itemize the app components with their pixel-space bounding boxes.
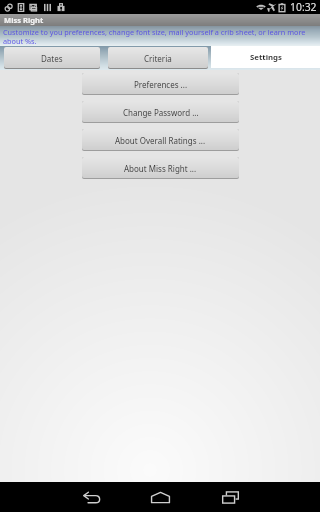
button[interactable]: Recent apps <box>197 482 263 512</box>
staticText: Miss Right <box>4 15 44 25</box>
button[interactable]: Back <box>59 482 125 512</box>
staticText: 10:32 <box>290 0 317 14</box>
button[interactable]: Home <box>127 482 193 512</box>
staticText: About Overall Ratings ... <box>115 135 206 146</box>
button[interactable]: About Miss Right ... <box>82 157 239 179</box>
button[interactable]: Settings <box>211 46 320 68</box>
button[interactable]: Criteria <box>108 47 208 69</box>
staticText: About Miss Right ... <box>124 163 197 174</box>
staticText: Customize to you preferences, change fon… <box>3 27 320 46</box>
staticText: Preferences ... <box>134 79 188 90</box>
button[interactable]: Change Password ... <box>82 101 239 123</box>
button[interactable]: Dates <box>4 47 100 69</box>
staticText: Dates <box>41 53 63 64</box>
button[interactable]: Preferences ... <box>82 73 239 95</box>
staticText: Settings <box>250 52 282 63</box>
staticText: Criteria <box>144 53 172 64</box>
staticText: Change Password ... <box>123 107 199 118</box>
button[interactable]: About Overall Ratings ... <box>82 129 239 151</box>
